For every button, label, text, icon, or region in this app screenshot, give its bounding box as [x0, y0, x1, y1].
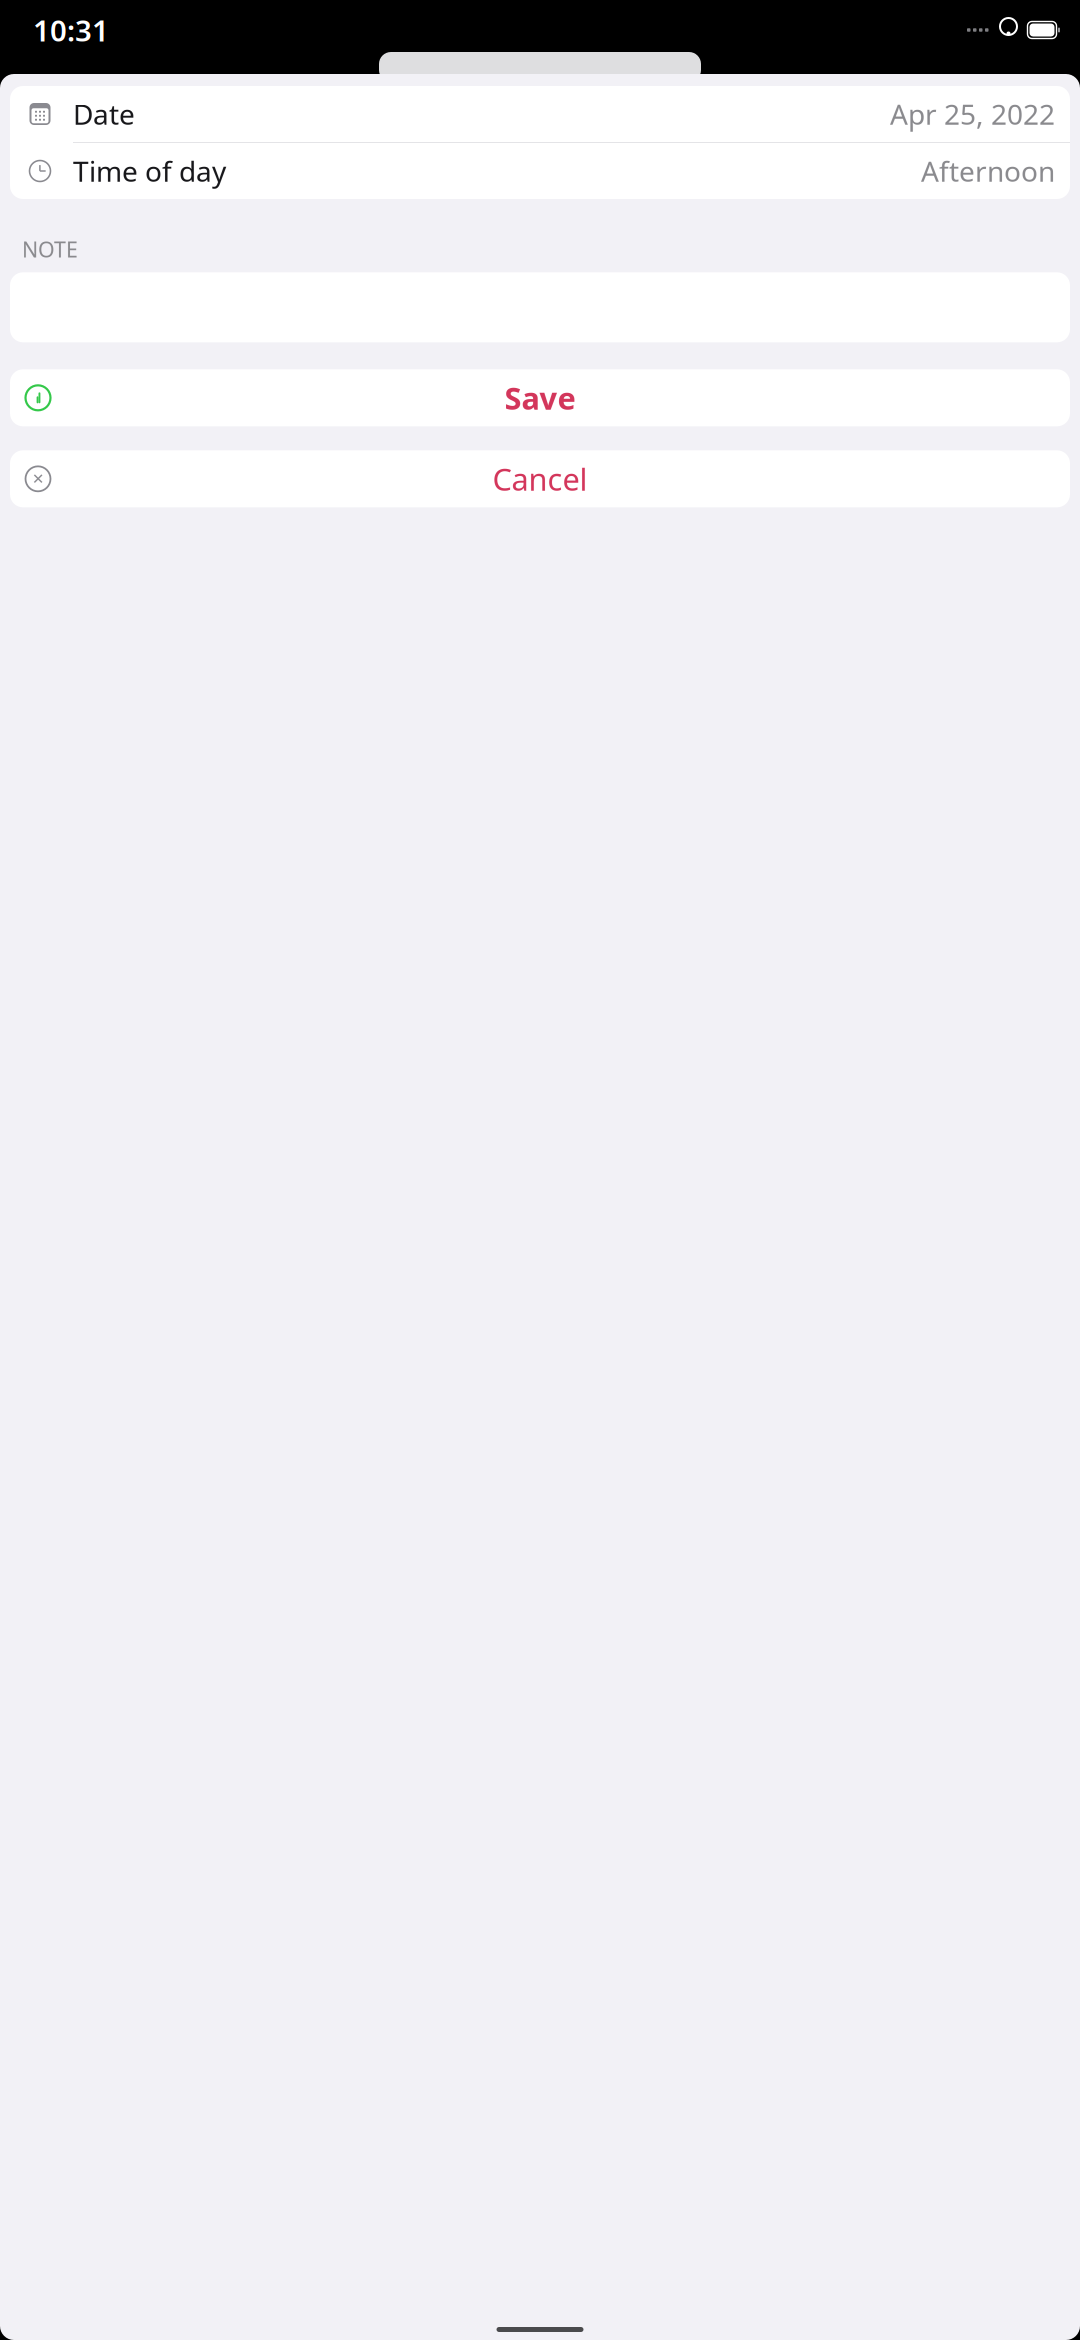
button[interactable]: Date	[10, 86, 1070, 142]
staticText: Apr 25, 2022	[890, 95, 1055, 133]
button[interactable]: Time of day	[10, 143, 1070, 199]
staticText: 10:31	[33, 10, 109, 49]
staticText: ✕	[32, 470, 44, 487]
staticText: Afternoon	[921, 152, 1055, 190]
button[interactable]: ✕	[10, 450, 1070, 507]
staticText: Save	[504, 377, 575, 418]
staticText: Time of day	[73, 152, 226, 190]
staticText: NOTE	[22, 235, 78, 263]
button[interactable]: Save	[10, 369, 1070, 426]
staticText: Date	[73, 95, 135, 133]
staticText: Cancel	[492, 458, 587, 499]
